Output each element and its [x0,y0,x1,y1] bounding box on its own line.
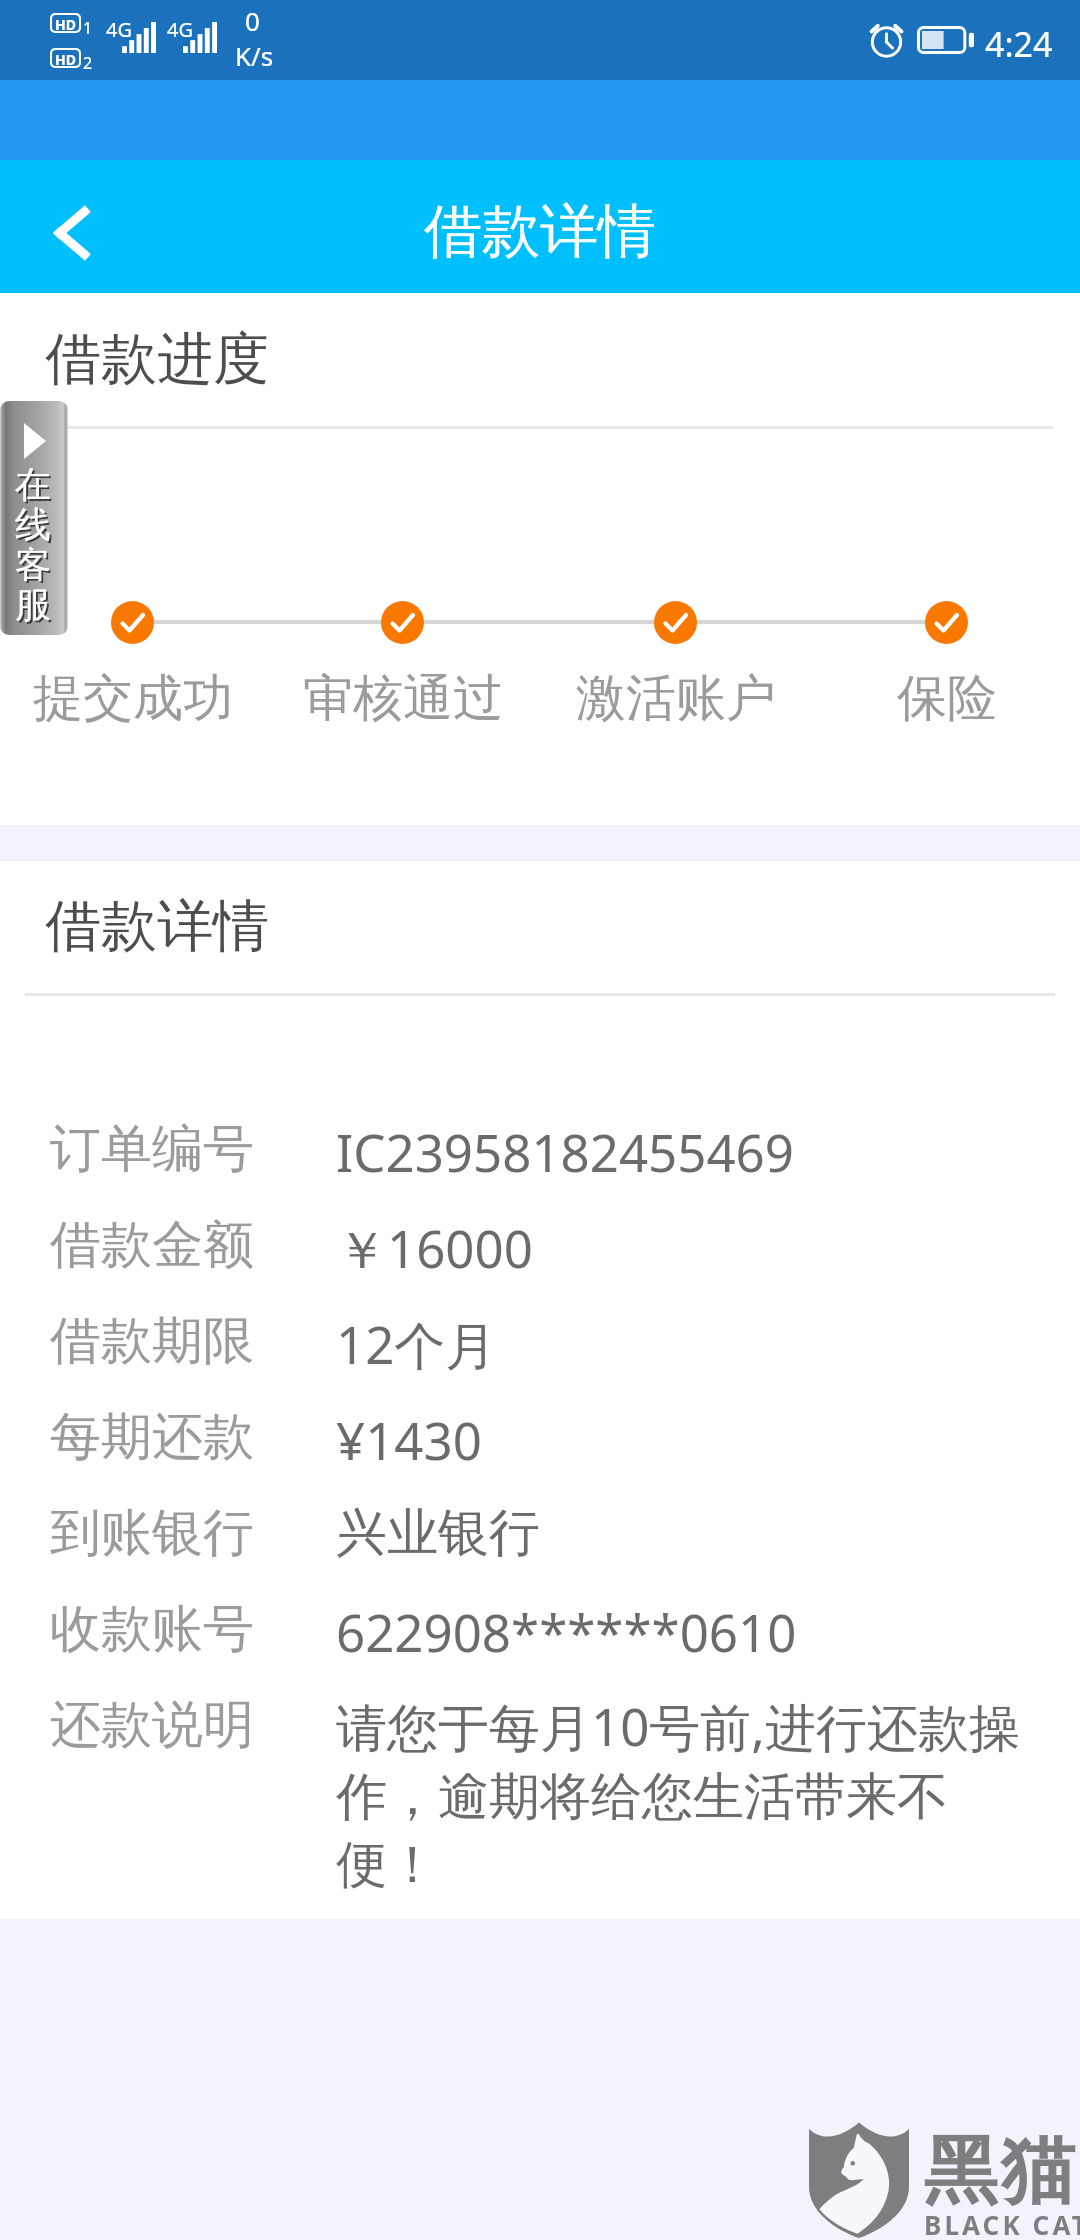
staticText: 客 [15,542,51,587]
staticText: 线 [17,504,53,549]
staticText: 黑猫 [922,2125,1076,2218]
staticText: 到账银行 [50,1501,254,1565]
staticText: 提交成功 [0,667,273,730]
staticText: 借款期限 [50,1309,254,1373]
button[interactable]: Back [0,160,140,293]
staticText: HD [55,15,76,31]
staticText: 激活账户 [536,667,816,730]
staticText: 在 [15,462,51,507]
staticText: 兴业银行 [336,1501,540,1565]
staticText: 订单编号 [50,1117,254,1181]
staticText: 收款账号 [50,1597,254,1661]
staticText: 借款进度 [45,324,269,395]
staticText: 12个月 [336,1309,497,1379]
staticText: IC23958182455469 [336,1117,794,1186]
staticText: 4G [106,16,132,43]
staticText: 借款详情 [424,195,656,268]
staticText: 线 [15,502,51,547]
staticText: ¥1430 [336,1405,482,1474]
staticText: 0 [245,3,260,38]
staticText: 借款金额 [50,1213,254,1277]
staticText: 在 [17,464,53,509]
staticText: ￥16000 [336,1213,533,1283]
staticText: K/s [235,38,274,73]
staticText: BLACK CAT [924,2207,1080,2240]
button[interactable]: 在线客服 [0,401,68,635]
staticText: HD [55,50,76,66]
staticText: 4G [167,16,193,43]
staticText: 1 [83,17,93,39]
staticText: 4:24 [985,21,1053,67]
staticText: 还款说明 [50,1693,254,1757]
staticText: 服 [15,582,51,627]
staticText: 客 [17,544,53,589]
staticText: 保险 [807,667,1080,730]
staticText: 622908******0610 [336,1597,797,1666]
staticText: 2 [83,52,93,74]
staticText: 审核通过 [263,667,543,730]
staticText: 请您于每月10号前,进行还款操作，逾期将给您生活带来不便！ [336,1691,1036,1897]
staticText: 服 [17,584,53,629]
staticText: 每期还款 [50,1405,254,1469]
staticText: 借款详情 [45,891,269,962]
